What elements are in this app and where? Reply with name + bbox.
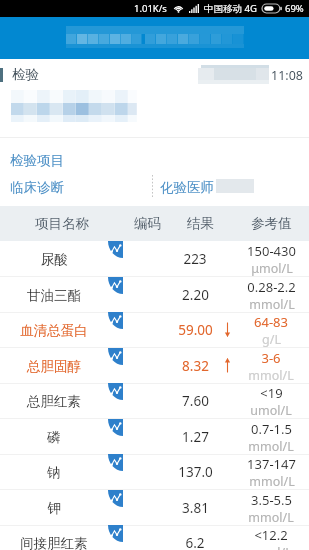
staticText: mmol/L xyxy=(248,367,294,384)
button[interactable]: 血清总蛋白 xyxy=(0,312,309,348)
staticText: 59.00 xyxy=(178,321,213,339)
button[interactable]: 检验项目 xyxy=(0,146,309,172)
staticText: 编码 xyxy=(134,215,161,232)
staticText: umol/L xyxy=(250,544,292,550)
staticText: 3.5-5.5 xyxy=(251,491,292,509)
staticText: 64-83 xyxy=(254,313,288,331)
staticText: 3.81 xyxy=(182,499,209,517)
button[interactable]: 磷 xyxy=(0,419,309,455)
staticText: 137-147 xyxy=(247,455,296,473)
button[interactable]: 尿酸 xyxy=(0,241,309,277)
button[interactable]: 总胆固醇 xyxy=(0,348,309,384)
staticText: 11:08 xyxy=(271,67,303,84)
staticText: mmol/L xyxy=(249,473,295,490)
staticText: μmol/L xyxy=(251,260,293,277)
staticText: 6.2 xyxy=(185,534,205,550)
button[interactable]: 间接胆红素 xyxy=(0,525,309,550)
staticText: <12.2 xyxy=(254,526,288,544)
staticText: 钠 xyxy=(47,464,61,481)
staticText: 69% xyxy=(285,2,304,15)
button[interactable]: 甘油三酯 xyxy=(0,277,309,313)
staticText: mmol/L xyxy=(248,509,294,526)
other: Show trend chart xyxy=(108,419,123,436)
button[interactable]: 临床诊断 xyxy=(0,173,150,199)
button[interactable]: 总胆红素 xyxy=(0,383,309,419)
staticText: mmol/L xyxy=(248,438,294,455)
button[interactable]: 化验医师 xyxy=(158,173,298,199)
staticText: 2.20 xyxy=(182,286,209,304)
staticText: 间接胆红素 xyxy=(20,535,88,550)
staticText: <19 xyxy=(260,384,283,402)
staticText: 尿酸 xyxy=(41,251,68,268)
staticText: 项目名称 xyxy=(35,215,89,232)
staticText: 检验 xyxy=(12,66,39,83)
staticText: 8.32 xyxy=(182,357,209,375)
staticText: 1.27 xyxy=(182,428,209,446)
staticText: 0.28-2.2 xyxy=(247,278,296,296)
staticText: umol/L xyxy=(250,402,292,419)
staticText: 1.01K/s xyxy=(134,2,167,15)
staticText: 总胆固醇 xyxy=(27,358,81,375)
staticText: 磷 xyxy=(47,429,61,446)
other: Show trend chart xyxy=(108,312,123,329)
button[interactable] xyxy=(0,17,309,59)
other: Show trend chart xyxy=(108,490,123,507)
other: Show trend chart xyxy=(108,525,123,542)
staticText: 中国移动 4G xyxy=(204,2,257,15)
staticText: 137.0 xyxy=(178,463,213,481)
button[interactable]: 钠 xyxy=(0,454,309,490)
staticText: 甘油三酯 xyxy=(27,287,81,304)
staticText: 结果 xyxy=(187,215,214,232)
staticText: 3-6 xyxy=(261,349,281,367)
other: Show trend chart xyxy=(108,454,123,471)
staticText: 血清总蛋白 xyxy=(20,322,88,339)
staticText: g/L xyxy=(262,331,281,348)
other: Show trend chart xyxy=(108,348,123,365)
staticText: mmol/L xyxy=(249,296,295,313)
staticText: 0.7-1.5 xyxy=(251,420,292,438)
staticText: 临床诊断 xyxy=(10,179,64,196)
staticText: 检验项目 xyxy=(10,152,64,169)
staticText: 总胆红素 xyxy=(27,393,81,410)
other: Show trend chart xyxy=(108,277,123,294)
staticText: 150-430 xyxy=(247,242,296,260)
button[interactable]: 钾 xyxy=(0,490,309,526)
staticText: 钾 xyxy=(47,500,61,517)
staticText: 7.60 xyxy=(182,392,209,410)
other: Show trend chart xyxy=(108,241,123,258)
other: Show trend chart xyxy=(108,383,123,400)
staticText: 化验医师 xyxy=(160,179,214,196)
staticText: 223 xyxy=(183,250,207,268)
staticText: 参考值 xyxy=(251,215,292,232)
